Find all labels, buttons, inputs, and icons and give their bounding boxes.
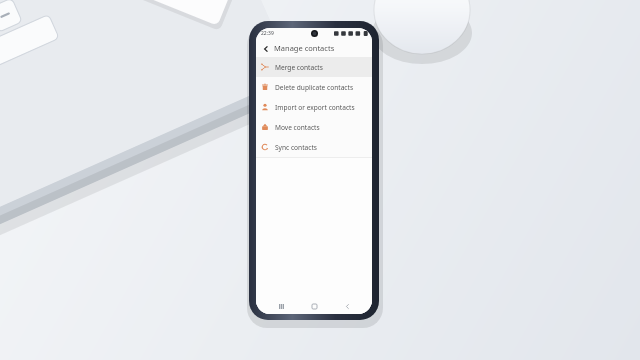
- staticText: Delete duplicate contacts: [275, 83, 354, 92]
- staticText: 22:39: [261, 30, 274, 37]
- button[interactable]: Import or export contacts: [256, 97, 372, 117]
- button[interactable]: Navigate up: [259, 42, 272, 55]
- button[interactable]: Home: [306, 298, 322, 314]
- staticText: Manage contacts: [274, 43, 335, 53]
- button[interactable]: Merge contacts: [256, 57, 372, 77]
- button[interactable]: Move contacts: [256, 117, 372, 137]
- staticText: Sync contacts: [275, 143, 317, 152]
- staticText: Move contacts: [275, 123, 320, 132]
- button[interactable]: Back: [339, 298, 355, 314]
- button[interactable]: Delete duplicate contacts: [256, 77, 372, 97]
- button[interactable]: Sync contacts: [256, 137, 372, 157]
- staticText: Import or export contacts: [275, 103, 355, 112]
- button[interactable]: Recent apps: [273, 298, 289, 314]
- staticText: Merge contacts: [275, 63, 323, 72]
